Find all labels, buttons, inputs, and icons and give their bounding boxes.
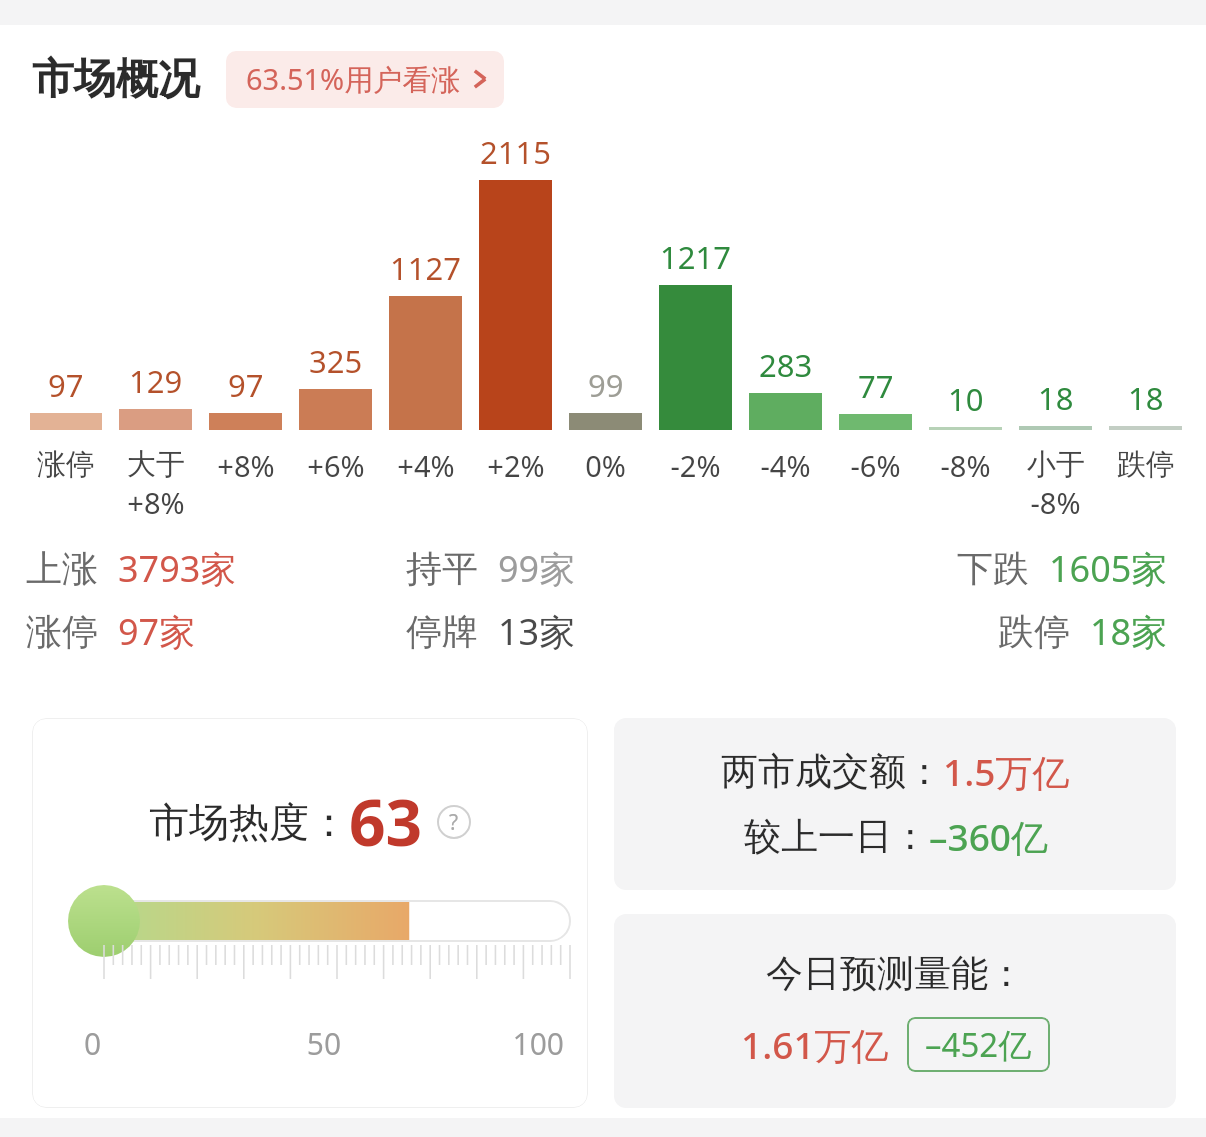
staticText: 97: [228, 364, 264, 406]
staticText: –452亿: [925, 1022, 1032, 1067]
staticText: +6%: [307, 446, 365, 485]
staticText: 18: [1128, 377, 1164, 419]
staticText: 100: [404, 1023, 564, 1064]
staticText: 市场概况: [32, 53, 200, 106]
staticText: 129: [129, 360, 183, 402]
staticText: -6%: [850, 446, 901, 485]
button[interactable]: 今日预测量能：: [614, 914, 1176, 1108]
staticText: 283: [759, 344, 813, 386]
staticText: 77: [858, 365, 894, 407]
staticText: 市场热度：: [149, 797, 349, 847]
staticText: -4%: [760, 446, 811, 485]
button[interactable]: 市场热度：: [32, 718, 588, 1108]
staticText: 3793家: [118, 544, 237, 593]
staticText: -8%: [940, 446, 991, 485]
staticText: 50: [244, 1023, 404, 1064]
button[interactable]: 市场热度说明: [437, 805, 471, 839]
staticText: ?: [449, 808, 459, 837]
staticText: +8%: [127, 483, 185, 522]
staticText: +4%: [397, 446, 455, 485]
staticText: +8%: [217, 446, 275, 485]
staticText: 2115: [480, 131, 551, 173]
staticText: 0%: [585, 446, 626, 485]
staticText: 97家: [118, 607, 196, 656]
staticText: 今日预测量能：: [766, 950, 1025, 997]
staticText: 1605家: [1049, 544, 1168, 593]
button[interactable]: 63.51%用户看涨: [226, 51, 504, 108]
staticText: 较上一日：: [744, 813, 929, 860]
staticText: –360亿: [929, 811, 1048, 862]
staticText: 涨停: [37, 446, 95, 483]
staticText: 99家: [498, 544, 576, 593]
staticText: 325: [309, 340, 363, 382]
staticText: 停牌: [406, 609, 478, 654]
staticText: 跌停: [1117, 446, 1175, 483]
staticText: 1217: [660, 236, 731, 278]
staticText: 涨停: [26, 609, 98, 654]
button[interactable]: 两市成交额：: [614, 718, 1176, 890]
staticText: 1.5万亿: [943, 746, 1070, 797]
staticText: -2%: [670, 446, 721, 485]
staticText: 63.51%用户看涨: [246, 59, 461, 99]
staticText: 跌停: [998, 609, 1070, 654]
staticText: 上涨: [26, 546, 98, 591]
staticText: 18家: [1090, 607, 1168, 656]
staticText: 10: [948, 378, 984, 420]
staticText: -8%: [1030, 483, 1081, 522]
staticText: 63: [349, 778, 423, 865]
staticText: 1.61万亿: [741, 1019, 889, 1070]
staticText: 持平: [406, 546, 478, 591]
staticText: +2%: [487, 446, 545, 485]
staticText: 99: [588, 364, 624, 406]
staticText: 0: [84, 1023, 244, 1064]
staticText: 下跌: [957, 546, 1029, 591]
staticText: 97: [48, 364, 84, 406]
staticText: 大于: [127, 446, 185, 483]
staticText: 两市成交额：: [721, 748, 943, 795]
staticText: 小于: [1027, 446, 1085, 483]
staticText: 1127: [390, 247, 461, 289]
staticText: 18: [1038, 377, 1074, 419]
staticText: 13家: [498, 607, 576, 656]
